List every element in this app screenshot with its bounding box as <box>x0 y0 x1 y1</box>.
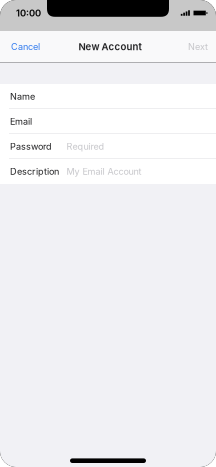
button[interactable]: Description <box>0 159 216 184</box>
button[interactable]: Password <box>0 134 216 159</box>
staticText: 10:00 <box>16 7 41 19</box>
button[interactable]: Cancel <box>0 31 49 62</box>
staticText: Description <box>10 166 59 177</box>
button[interactable]: Name <box>0 84 216 109</box>
staticText: Name <box>10 91 35 102</box>
staticText: Next <box>188 41 208 52</box>
staticText: Password <box>10 141 52 152</box>
staticText: Email <box>10 116 32 127</box>
staticText: Required <box>66 141 104 152</box>
button[interactable]: Email <box>0 109 216 134</box>
button[interactable]: Next <box>179 31 216 62</box>
staticText: My Email Account <box>66 166 141 177</box>
staticText: New Account <box>78 41 141 52</box>
staticText: Cancel <box>11 41 40 52</box>
